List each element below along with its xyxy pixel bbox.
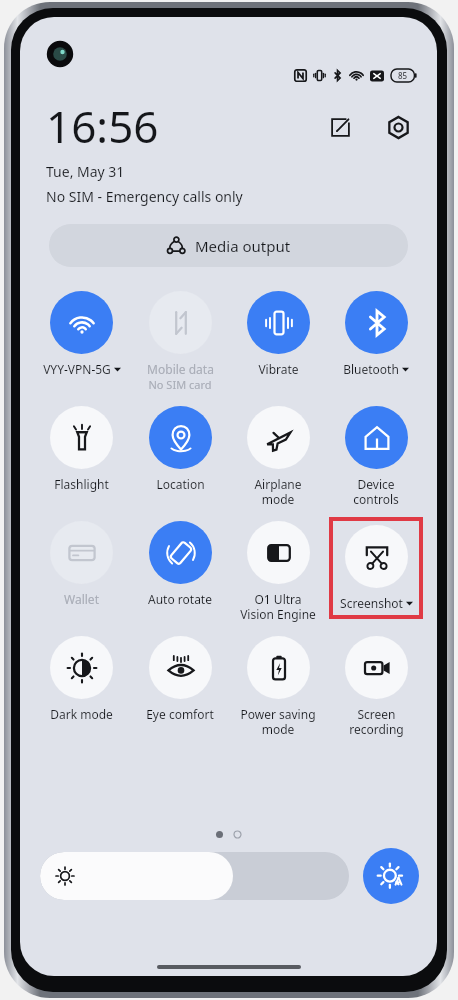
button[interactable]: Media output xyxy=(49,224,408,267)
button[interactable]: Screenshot xyxy=(333,521,419,615)
staticText: VYY-VPN-5G xyxy=(43,361,111,377)
button[interactable]: Dark mode xyxy=(32,632,131,722)
button[interactable]: Settings xyxy=(377,106,419,148)
staticText: Bluetooth xyxy=(343,361,399,377)
staticText: Eye comfort xyxy=(146,706,214,722)
button[interactable]: Flashlight xyxy=(32,402,131,492)
staticText: 85 xyxy=(398,70,408,81)
staticText: Location xyxy=(156,476,205,492)
staticText: No SIM - Emergency calls only xyxy=(46,187,243,206)
button[interactable]: Edit quick settings xyxy=(319,106,361,148)
staticText: Screen recording xyxy=(349,706,404,737)
staticText: Dark mode xyxy=(50,706,113,722)
staticText: 16:56 xyxy=(46,96,159,156)
button[interactable]: Vibrate xyxy=(229,287,327,377)
button[interactable]: VYY-VPN-5G xyxy=(32,287,131,377)
button[interactable]: Bluetooth xyxy=(327,287,425,377)
staticText: No SIM card xyxy=(148,377,212,392)
staticText: Tue, May 31 xyxy=(46,162,125,181)
button[interactable]: O1 Ultra Vision Engine xyxy=(229,517,327,622)
button[interactable]: Location xyxy=(131,402,229,492)
button[interactable]: Wallet xyxy=(32,517,131,607)
button[interactable]: Eye comfort xyxy=(131,632,229,722)
staticText: Screenshot xyxy=(340,595,403,611)
staticText: O1 Ultra Vision Engine xyxy=(240,591,316,622)
button[interactable]: Brightness xyxy=(40,852,349,900)
staticText: Airplane mode xyxy=(254,476,302,507)
button[interactable]: Airplane mode xyxy=(229,402,327,507)
button[interactable]: Auto rotate xyxy=(131,517,229,607)
staticText: Mobile data xyxy=(147,361,214,377)
staticText: Power saving mode xyxy=(240,706,316,737)
staticText: Media output xyxy=(195,236,291,256)
staticText: Wallet xyxy=(64,591,99,607)
button[interactable]: Device controls xyxy=(327,402,425,507)
staticText: Flashlight xyxy=(54,476,109,492)
button[interactable]: Mobile data xyxy=(131,287,229,392)
staticText: Device controls xyxy=(353,476,399,507)
staticText: Vibrate xyxy=(258,361,299,377)
button[interactable]: Screen recording xyxy=(327,632,425,737)
button[interactable]: Auto brightness xyxy=(363,848,419,904)
button[interactable]: Power saving mode xyxy=(229,632,327,737)
staticText: Auto rotate xyxy=(148,591,212,607)
